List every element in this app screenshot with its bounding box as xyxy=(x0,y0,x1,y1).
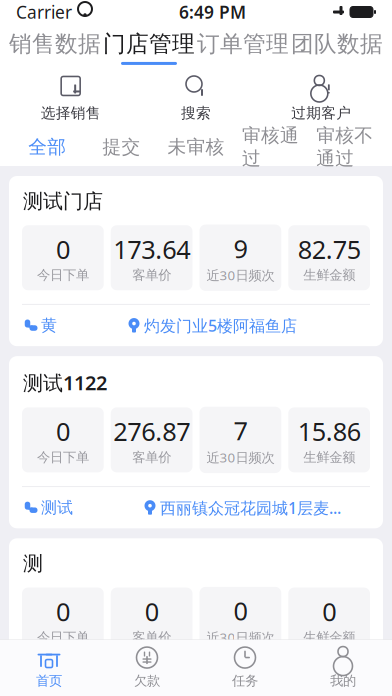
button[interactable]: 审核通过 xyxy=(233,114,308,180)
staticText: 9 xyxy=(233,232,247,265)
staticText: 测 xyxy=(23,551,43,576)
button[interactable]: 西丽镇众冠花园城1层麦... xyxy=(143,487,341,528)
button[interactable]: 团队数据 xyxy=(290,22,384,70)
button[interactable]: 审核不通过 xyxy=(308,114,382,180)
button[interactable]: 搜索 xyxy=(133,68,259,128)
staticText: 提交 xyxy=(103,135,141,158)
staticText: 欠款 xyxy=(134,673,160,689)
staticText: 15.86 xyxy=(298,414,361,448)
button[interactable]: 深南中路2000号福田... xyxy=(143,667,320,696)
staticText: 西丽镇众冠花园城1层麦... xyxy=(160,497,341,518)
staticText: 今日下单 xyxy=(37,629,89,646)
button[interactable]: 客气 xyxy=(23,668,73,696)
staticText: Carrier xyxy=(16,0,72,23)
staticText: 团队数据 xyxy=(291,30,383,58)
staticText: 灼发门业5楼阿福鱼店 xyxy=(144,315,297,336)
staticText: 0 xyxy=(322,594,336,628)
staticText: 任务 xyxy=(232,673,258,689)
staticText: 0 xyxy=(56,414,70,448)
button[interactable]: 测试 xyxy=(23,488,73,528)
staticText: 测试门店 xyxy=(23,189,103,214)
staticText: 0 xyxy=(145,594,159,628)
staticText: 全部 xyxy=(28,135,66,158)
staticText: 今日下单 xyxy=(37,267,89,283)
button[interactable]: 全部 xyxy=(10,125,84,168)
button[interactable]: 过期客户 xyxy=(259,68,384,128)
staticText: 近30日频次 xyxy=(206,448,274,466)
button[interactable]: 灼发门业5楼阿福鱼店 xyxy=(127,305,297,346)
staticText: 生鲜金额 xyxy=(303,449,355,465)
staticText: 未审核 xyxy=(167,135,224,158)
staticText: 搜索 xyxy=(181,104,211,122)
button[interactable]: 销售数据 xyxy=(8,22,102,70)
staticText: 审核不通过 xyxy=(316,124,373,170)
staticText: 276.87 xyxy=(113,414,190,448)
staticText: 生鲜金额 xyxy=(303,267,355,283)
button[interactable]: 我的 xyxy=(294,640,392,689)
staticText: 首页 xyxy=(36,673,62,689)
staticText: 销售数据 xyxy=(9,30,101,58)
button[interactable]: 首页 xyxy=(0,640,98,689)
staticText: 0 xyxy=(233,594,247,627)
staticText: 6:49 PM xyxy=(179,0,246,23)
staticText: 客单价 xyxy=(132,449,171,465)
staticText: 过期客户 xyxy=(291,104,351,122)
button[interactable]: 门店管理 xyxy=(102,22,196,70)
button[interactable]: 欠款 xyxy=(98,640,196,689)
staticText: 客单价 xyxy=(132,629,171,646)
staticText: 82.75 xyxy=(298,232,361,266)
staticText: 173.64 xyxy=(113,232,190,266)
staticText: 黄 xyxy=(41,316,57,335)
staticText: 近30日频次 xyxy=(206,266,274,284)
staticText: 客气 xyxy=(41,678,73,696)
staticText: 订单管理 xyxy=(197,30,289,58)
staticText: 0 xyxy=(56,232,70,266)
staticText: 今日下单 xyxy=(37,449,89,465)
button[interactable]: 任务 xyxy=(196,640,294,689)
staticText: 近30日频次 xyxy=(206,628,274,646)
staticText: 我的 xyxy=(330,673,356,689)
staticText: 客单价 xyxy=(132,267,171,283)
staticText: 测试1122 xyxy=(23,369,107,396)
staticText: 门店管理 xyxy=(103,30,195,58)
staticText: 深南中路2000号福田... xyxy=(160,677,320,696)
button[interactable]: 选择销售 xyxy=(8,68,133,128)
staticText: 选择销售 xyxy=(41,104,101,122)
button[interactable]: 黄 xyxy=(23,306,57,345)
staticText: 0 xyxy=(56,594,70,628)
staticText: 生鲜金额 xyxy=(303,629,355,646)
staticText: 7 xyxy=(233,414,247,447)
staticText: 测试 xyxy=(41,498,73,518)
button[interactable]: 订单管理 xyxy=(196,22,290,70)
button[interactable]: 提交 xyxy=(84,125,159,168)
button[interactable]: 未审核 xyxy=(159,125,233,168)
staticText: 审核通过 xyxy=(242,124,299,170)
